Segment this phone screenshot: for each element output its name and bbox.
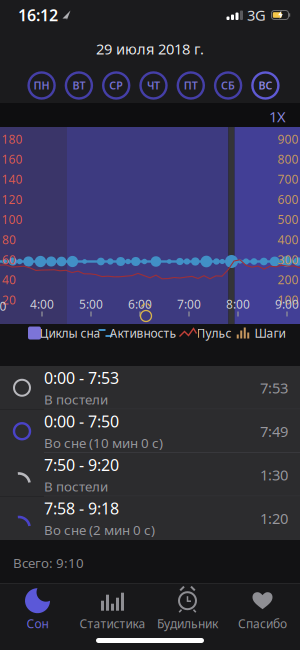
staticText: 1X — [269, 107, 286, 126]
staticText: СБ — [221, 78, 235, 93]
staticText: Шаги — [254, 325, 285, 341]
staticText: 100 — [1, 211, 22, 227]
button[interactable]: Спасибо — [225, 589, 300, 632]
staticText: Спасибо — [238, 616, 287, 632]
button[interactable]: Статистика — [75, 589, 150, 632]
button[interactable]: 7:50 - 9:20 — [0, 453, 300, 496]
staticText: ВС — [258, 78, 272, 93]
staticText: Во сне (10 мин 0 с) — [44, 434, 163, 452]
staticText: СР — [109, 78, 123, 93]
staticText: 1:30 — [260, 465, 288, 484]
button[interactable]: СБ — [213, 70, 243, 100]
staticText: Всего: 9:10 — [13, 554, 84, 572]
staticText: 7:00 — [177, 296, 201, 312]
button[interactable]: Будильник — [150, 589, 225, 632]
staticText: 600 — [277, 191, 298, 207]
staticText: 900 — [277, 131, 298, 147]
staticText: 20 — [2, 292, 16, 308]
staticText: ЧТ — [147, 78, 160, 93]
staticText: ПТ — [184, 78, 198, 93]
staticText: 8:00 — [226, 296, 250, 312]
staticText: 1:20 — [260, 508, 288, 528]
button[interactable]: 0:00 - 7:53 — [0, 366, 300, 409]
staticText: 200 — [277, 272, 298, 288]
staticText: 0 — [0, 298, 6, 314]
staticText: ВТ — [72, 78, 85, 93]
staticText: 180 — [1, 131, 22, 147]
staticText: 7:50 - 9:20 — [44, 454, 119, 475]
button[interactable]: 1X — [269, 104, 300, 126]
staticText: 100 — [277, 292, 298, 308]
staticText: 800 — [277, 151, 298, 167]
staticText: 9:00 — [275, 296, 299, 312]
staticText: Сон — [26, 616, 48, 632]
staticText: 300 — [277, 252, 298, 267]
button[interactable]: ПН — [27, 70, 57, 100]
staticText: Во сне (2 мин 0 с) — [44, 521, 155, 539]
staticText: 700 — [277, 171, 298, 187]
staticText: 120 — [1, 191, 22, 207]
staticText: 140 — [1, 171, 22, 187]
staticText: В постели — [44, 390, 108, 408]
staticText: 7:53 — [260, 378, 288, 397]
staticText: 0:00 - 7:50 — [44, 411, 119, 432]
staticText: Активность — [109, 325, 176, 341]
staticText: 7:49 — [260, 421, 288, 441]
staticText: 16:12 — [18, 4, 58, 26]
button[interactable]: Сон — [0, 589, 75, 632]
button[interactable]: 0:00 - 7:50 — [0, 409, 300, 453]
staticText: 4:00 — [30, 296, 54, 312]
staticText: 60 — [2, 252, 16, 267]
staticText: 160 — [1, 151, 22, 167]
staticText: В постели — [44, 477, 108, 495]
button[interactable]: ЧТ — [138, 70, 168, 100]
staticText: 7:58 - 9:18 — [44, 498, 119, 519]
staticText: Будильник — [157, 616, 218, 632]
staticText: 400 — [277, 231, 298, 247]
staticText: 40 — [2, 272, 16, 288]
button[interactable]: ВС — [250, 70, 280, 100]
button[interactable]: ПТ — [176, 70, 206, 100]
staticText: ПН — [34, 78, 50, 93]
staticText: 3G — [247, 5, 266, 25]
staticText: 5:00 — [79, 296, 103, 312]
button[interactable]: ВТ — [64, 70, 94, 100]
staticText: Пульс — [196, 325, 231, 341]
staticText: Статистика — [79, 616, 145, 632]
staticText: 80 — [2, 231, 16, 247]
button[interactable]: 7:58 - 9:18 — [0, 496, 300, 540]
staticText: 6:00 — [128, 296, 152, 312]
staticText: Циклы сна — [39, 325, 100, 341]
button[interactable]: СР — [101, 70, 131, 100]
staticText: 0:00 - 7:53 — [44, 367, 119, 388]
staticText: 29 июля 2018 г. — [96, 39, 204, 58]
staticText: 500 — [277, 211, 298, 227]
